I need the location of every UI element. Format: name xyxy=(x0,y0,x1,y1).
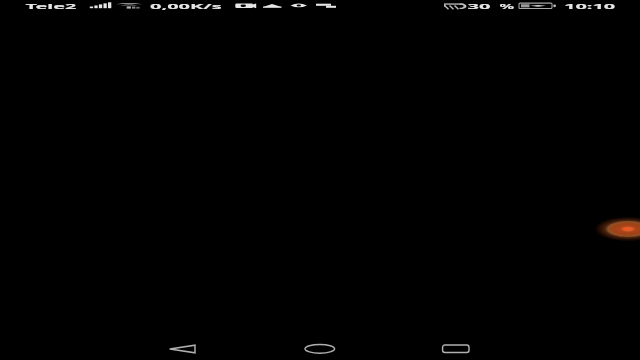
button[interactable]: Create new xyxy=(594,215,640,243)
button[interactable]: Recent apps xyxy=(433,332,479,360)
button[interactable]: Home xyxy=(297,332,343,360)
button[interactable]: Back xyxy=(160,332,206,360)
